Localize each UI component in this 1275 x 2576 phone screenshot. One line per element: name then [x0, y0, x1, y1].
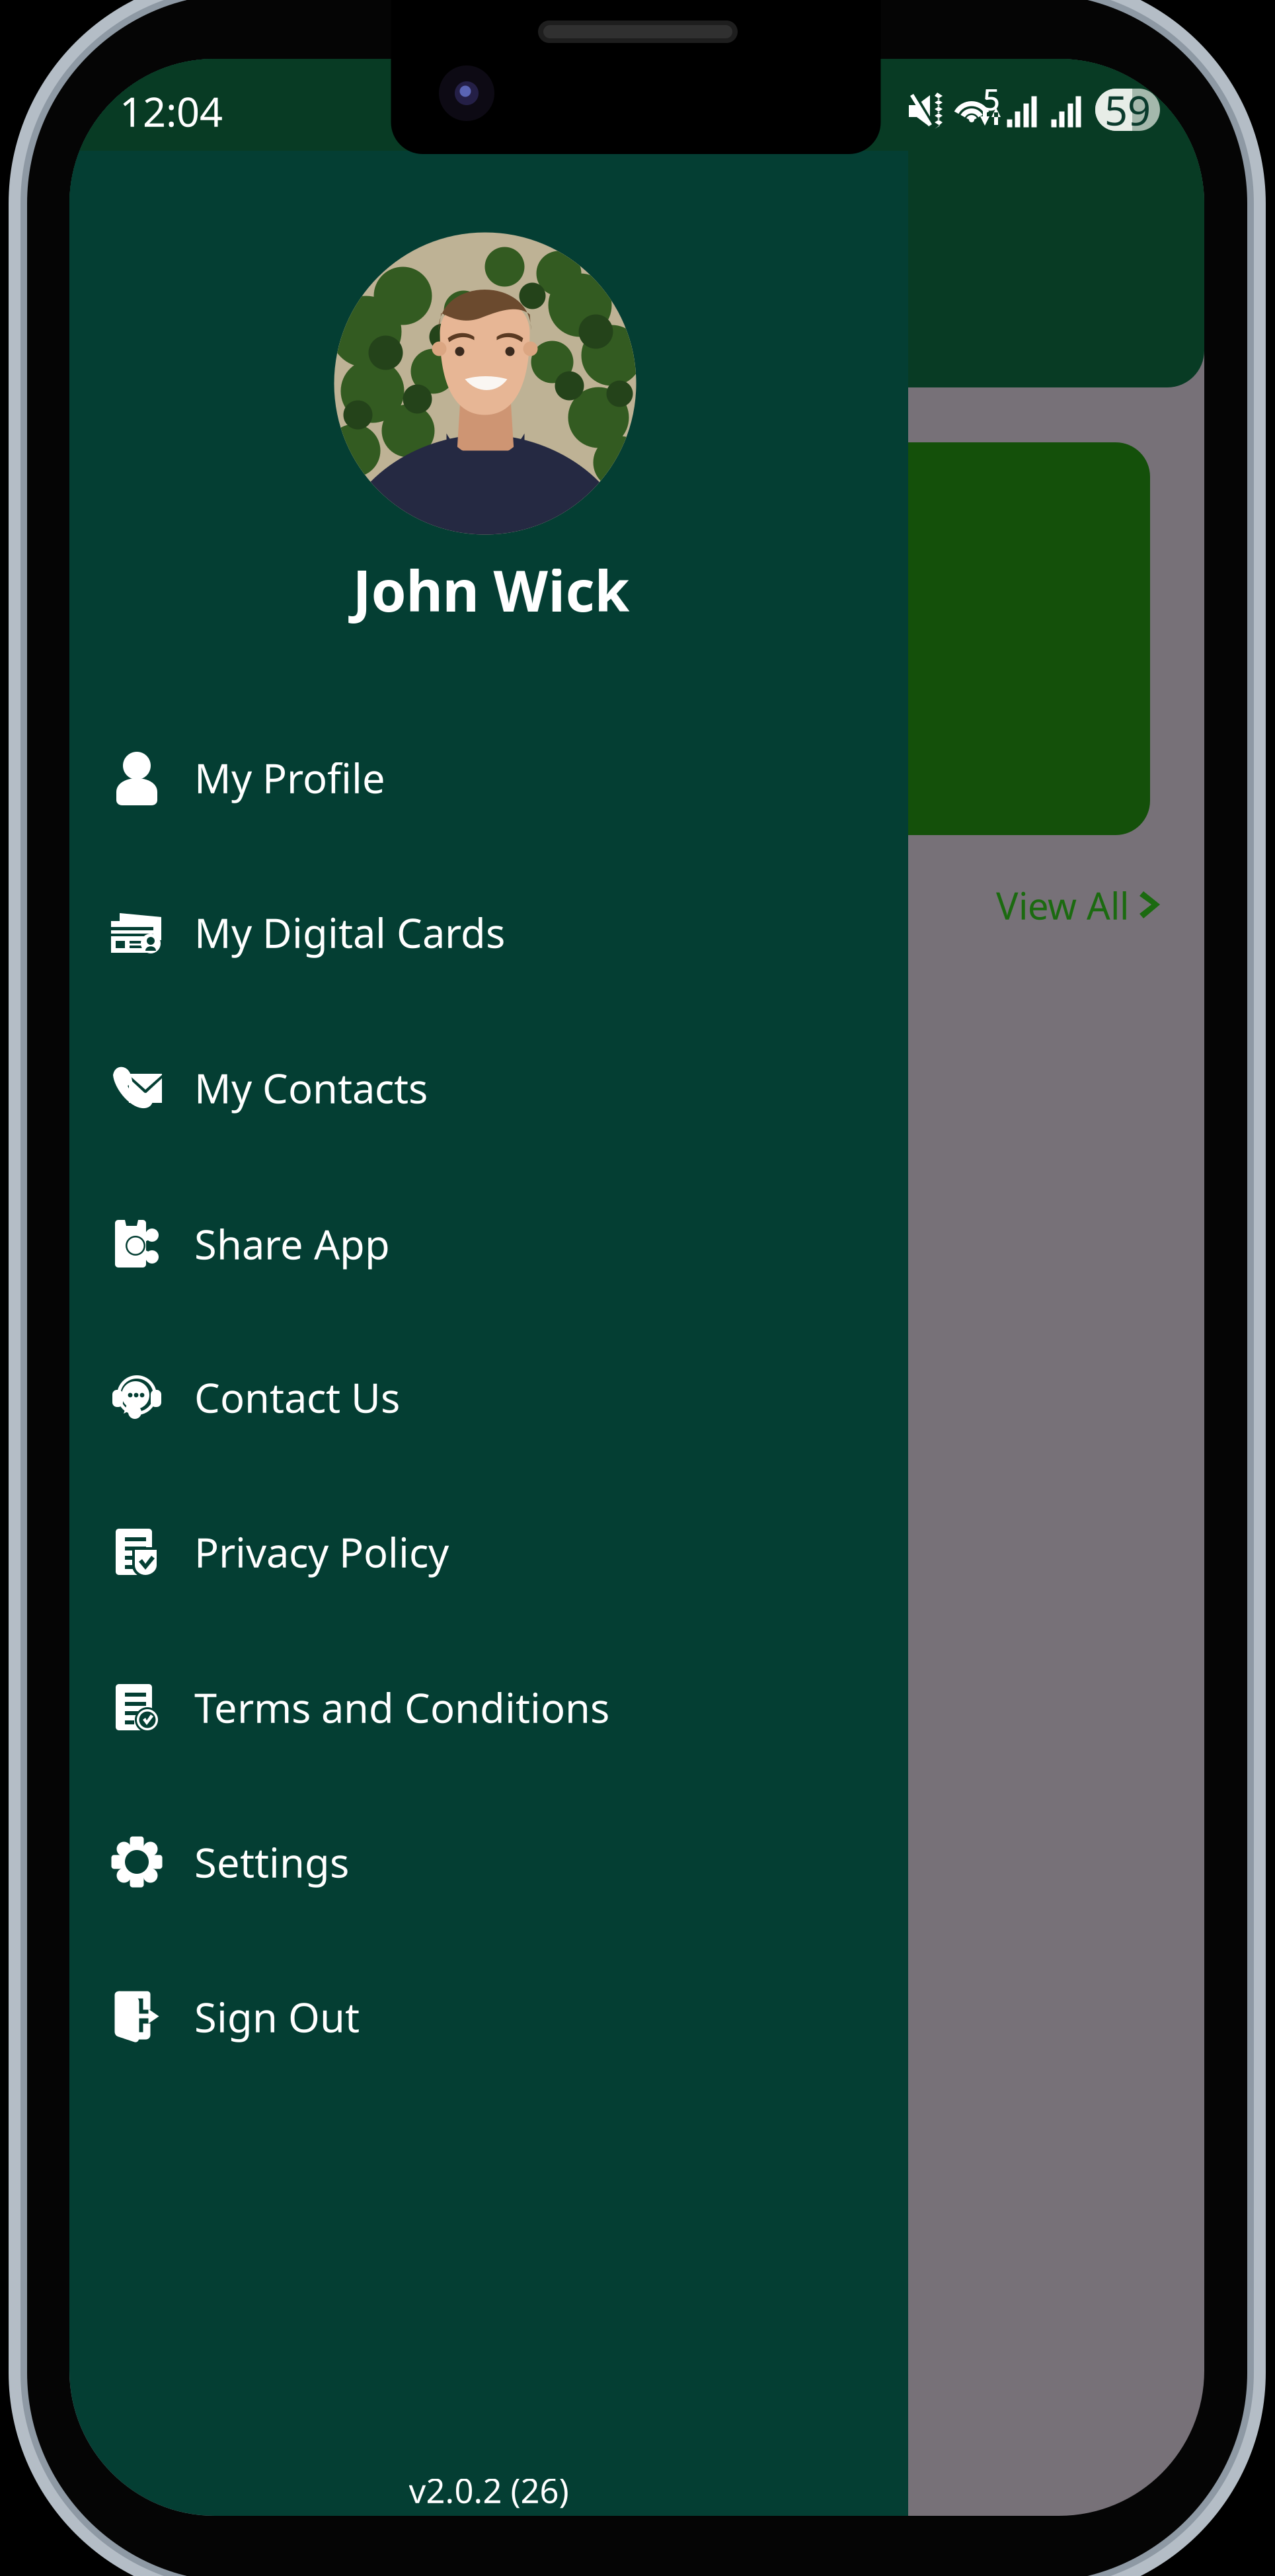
button[interactable]: My Contacts: [69, 1036, 908, 1139]
staticText: 5: [983, 79, 1000, 119]
staticText: John Wick: [353, 552, 630, 627]
button[interactable]: Privacy Policy: [69, 1500, 908, 1603]
staticText: 12:04: [120, 84, 223, 138]
button[interactable]: Settings: [69, 1810, 908, 1913]
button[interactable]: My Profile: [69, 726, 908, 829]
button[interactable]: View All: [982, 875, 1174, 936]
button[interactable]: Share App: [69, 1192, 908, 1295]
staticText: Share App: [194, 1217, 390, 1271]
staticText: v2.0.2 (26): [409, 2468, 569, 2512]
staticText: My Digital Cards: [194, 905, 505, 959]
staticText: My Contacts: [194, 1061, 428, 1115]
button[interactable]: My Digital Cards: [69, 881, 908, 984]
staticText: Settings: [194, 1835, 349, 1889]
button[interactable]: Sign Out: [69, 1965, 908, 2068]
staticText: Terms and Conditions: [194, 1680, 609, 1734]
staticText: Contact Us: [194, 1370, 400, 1424]
button[interactable]: Contact Us: [69, 1346, 908, 1449]
staticText: My Profile: [194, 751, 385, 804]
button[interactable]: Terms and Conditions: [69, 1656, 908, 1759]
staticText: 59: [1104, 83, 1151, 137]
staticText: View All: [996, 881, 1129, 930]
staticText: Privacy Policy: [194, 1525, 449, 1579]
staticText: Sign Out: [194, 1990, 360, 2044]
